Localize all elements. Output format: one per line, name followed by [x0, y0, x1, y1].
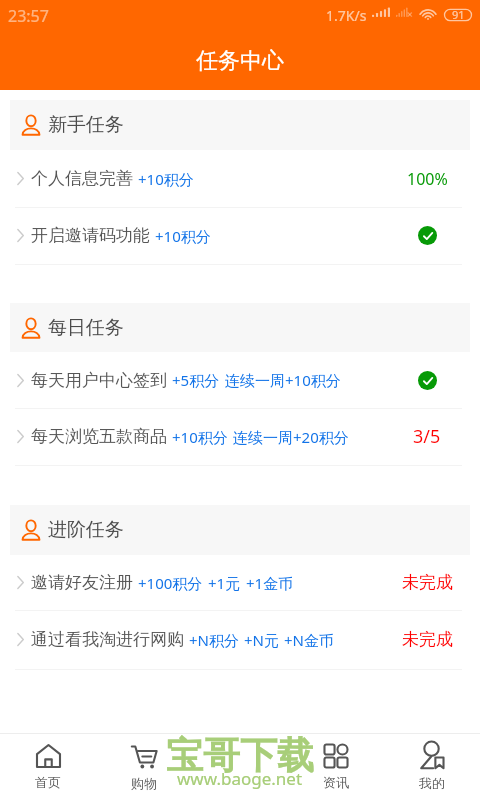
- staticText: 进阶任务: [48, 518, 124, 542]
- staticText: 1.7K/s: [326, 6, 367, 25]
- staticText: 每天浏览五款商品: [31, 426, 167, 447]
- button[interactable]: 通过看我淘进行网购: [0, 610, 480, 669]
- staticText: 连续一周+10积分: [225, 370, 341, 390]
- staticText: 每日任务: [48, 316, 124, 340]
- staticText: 我的: [419, 775, 445, 791]
- staticText: 91: [452, 7, 465, 22]
- staticText: 新手任务: [48, 113, 124, 137]
- staticText: 宝哥下载: [166, 732, 314, 779]
- staticText: 未完成: [402, 572, 453, 593]
- staticText: 未完成: [402, 629, 453, 650]
- staticText: 购物: [131, 775, 157, 791]
- staticText: 100%: [407, 168, 448, 190]
- staticText: 资讯: [323, 774, 349, 790]
- staticText: 任务中心: [196, 47, 284, 75]
- staticText: +1元: [208, 573, 241, 593]
- staticText: 3/5: [413, 424, 441, 449]
- staticText: +10积分: [138, 169, 194, 189]
- button[interactable]: 我的: [384, 733, 480, 800]
- button[interactable]: 个人信息完善: [0, 150, 480, 207]
- staticText: +10积分: [172, 427, 228, 447]
- staticText: 连续一周+20积分: [233, 427, 349, 447]
- staticText: 邀请好友注册: [31, 572, 133, 593]
- staticText: 个人信息完善: [31, 168, 133, 189]
- button[interactable]: 每天浏览五款商品: [0, 408, 480, 465]
- staticText: +N金币: [284, 630, 334, 650]
- button[interactable]: 开启邀请码功能: [0, 207, 480, 264]
- staticText: +N积分: [189, 630, 239, 650]
- staticText: +1金币: [246, 573, 294, 593]
- staticText: 首页: [35, 774, 61, 790]
- button[interactable]: 资讯: [288, 733, 384, 800]
- staticText: +100积分: [138, 573, 203, 593]
- button[interactable]: 邀请好友注册: [0, 555, 480, 610]
- staticText: +10积分: [155, 226, 211, 246]
- staticText: +5积分: [172, 370, 220, 390]
- button[interactable]: 购物: [96, 733, 192, 800]
- button[interactable]: 首页: [0, 733, 96, 800]
- staticText: 23:57: [8, 5, 49, 27]
- button[interactable]: 每天用户中心签到: [0, 352, 480, 408]
- staticText: www.baoge.net: [177, 767, 303, 790]
- staticText: 开启邀请码功能: [31, 225, 150, 246]
- staticText: +N元: [244, 630, 279, 650]
- staticText: 通过看我淘进行网购: [31, 629, 184, 650]
- staticText: 每天用户中心签到: [31, 370, 167, 391]
